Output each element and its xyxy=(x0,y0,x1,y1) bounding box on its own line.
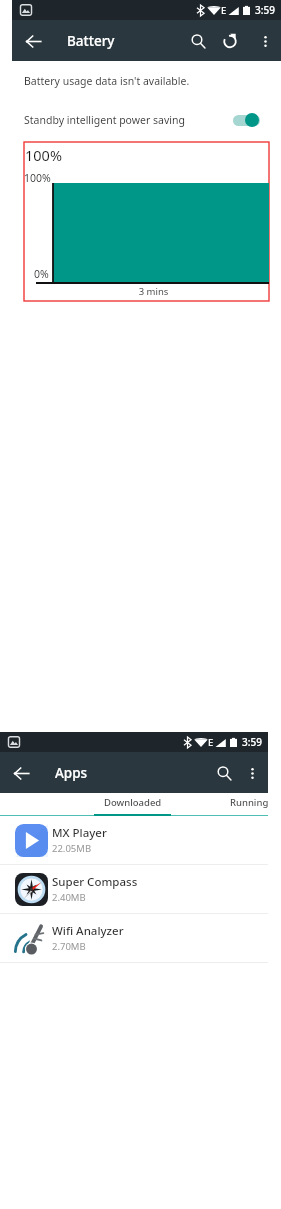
staticText: E xyxy=(221,4,227,17)
staticText: 2.40MB xyxy=(52,891,86,904)
button[interactable]: Back xyxy=(6,758,36,788)
button[interactable]: Search xyxy=(209,758,239,788)
staticText: 3:59 xyxy=(242,735,262,749)
staticText: Battery xyxy=(67,32,115,50)
button[interactable]: Wifi Analyzer xyxy=(0,914,268,962)
staticText: Battery usage data isn't available. xyxy=(24,74,190,88)
staticText: 100% xyxy=(24,171,51,185)
button[interactable]: MX Player xyxy=(0,816,268,864)
staticText: 2.70MB xyxy=(52,940,86,953)
button[interactable]: Downloaded xyxy=(94,793,171,816)
staticText: Wifi Analyzer xyxy=(52,923,124,939)
button[interactable]: More options xyxy=(252,28,278,54)
button[interactable]: Super Compass xyxy=(0,865,268,913)
staticText: 100% xyxy=(25,145,62,165)
button[interactable]: Running xyxy=(211,793,281,816)
button[interactable]: More options xyxy=(239,760,265,786)
staticText: Downloaded xyxy=(104,796,162,809)
button[interactable]: Back xyxy=(18,26,48,56)
staticText: Running xyxy=(230,796,269,809)
staticText: MX Player xyxy=(52,825,107,841)
button[interactable]: Refresh xyxy=(215,26,245,56)
staticText: Apps xyxy=(55,764,88,782)
staticText: 3 mins xyxy=(38,285,269,298)
staticText: 3:59 xyxy=(255,3,275,17)
staticText: E xyxy=(208,736,214,749)
staticText: 22.05MB xyxy=(52,842,92,855)
button[interactable]: Search xyxy=(183,26,213,56)
button[interactable]: Standby intelligent power saving xyxy=(0,106,281,134)
staticText: Super Compass xyxy=(52,874,138,890)
staticText: Standby intelligent power saving xyxy=(24,113,185,127)
staticText: 0% xyxy=(34,267,49,281)
